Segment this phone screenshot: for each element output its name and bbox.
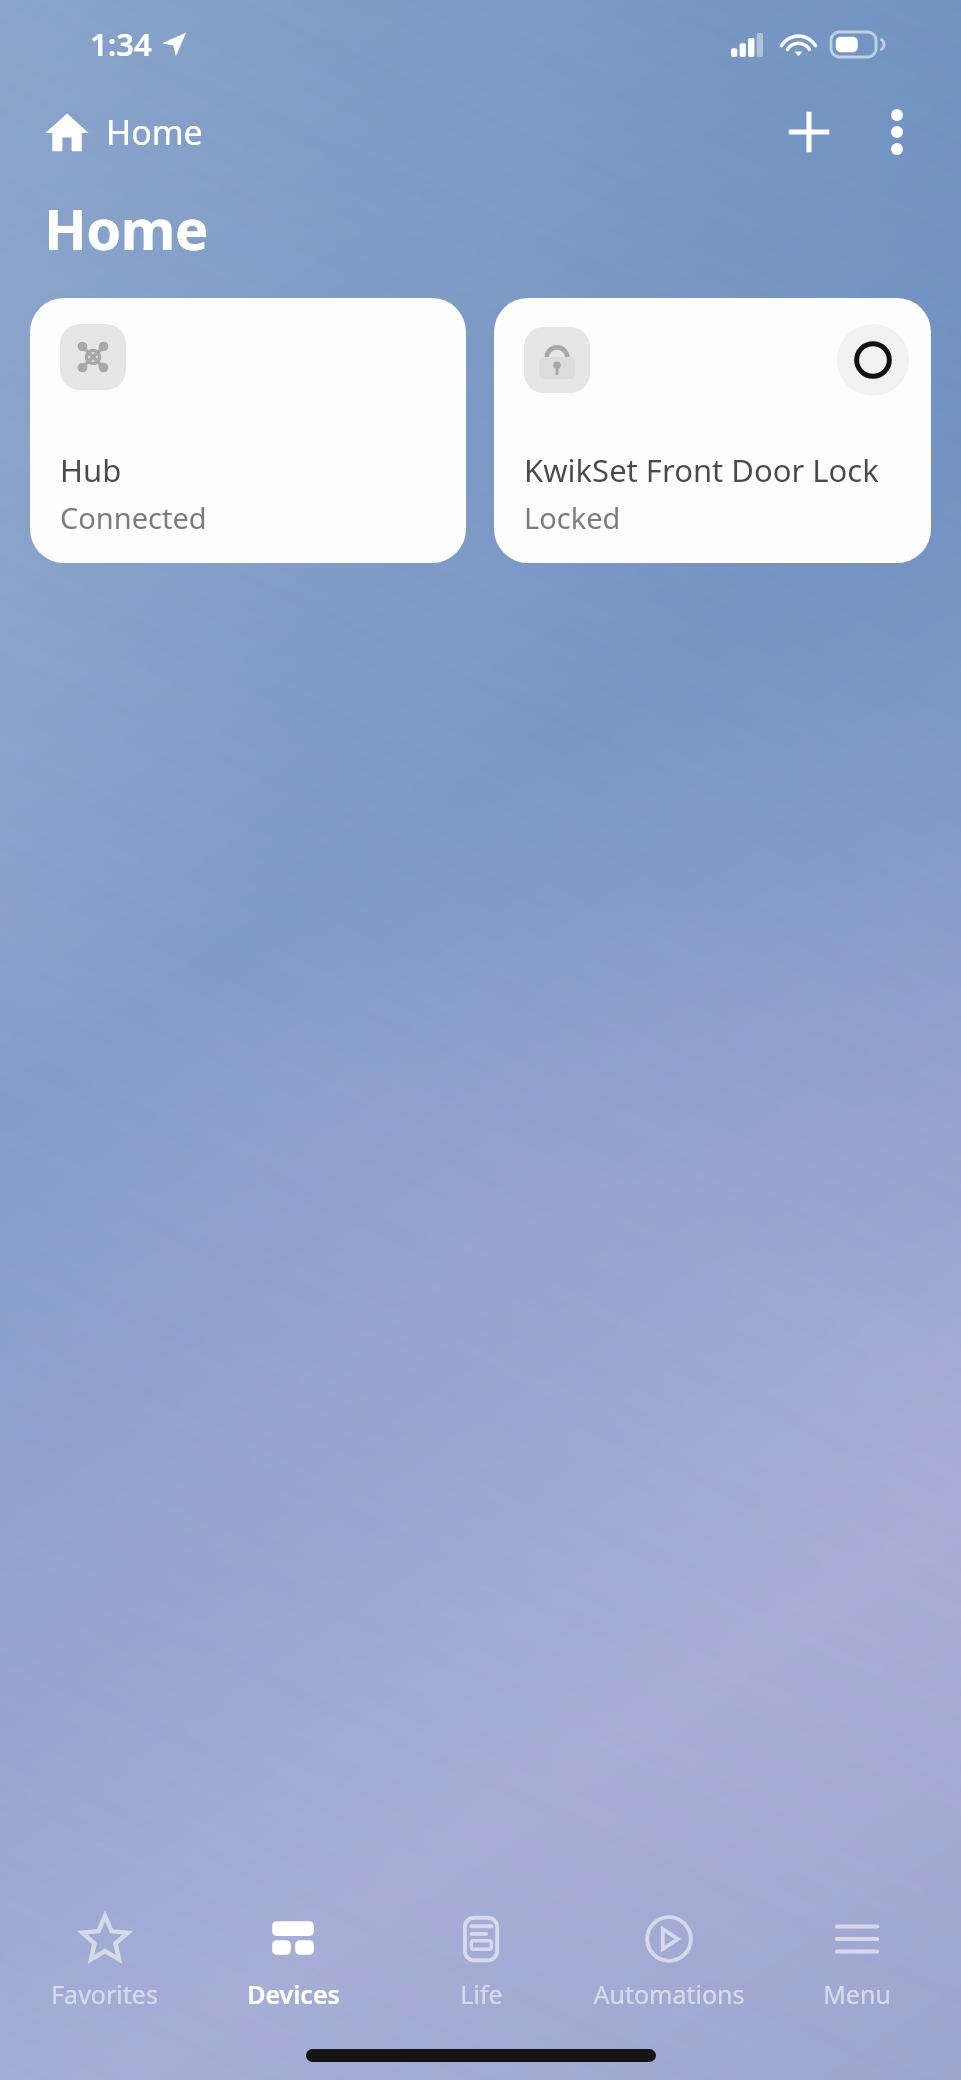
staticText: Automations (593, 1977, 745, 2011)
button[interactable]: Automations (575, 1899, 763, 2024)
button[interactable]: Favorites (10, 1899, 199, 2024)
button[interactable]: Hub (30, 298, 466, 563)
staticText: Home (44, 190, 208, 266)
staticText: Locked (524, 498, 621, 537)
button[interactable]: More options (853, 88, 941, 176)
staticText: KwikSet Front Door Lock (524, 449, 879, 491)
staticText: Devices (247, 1977, 340, 2011)
button[interactable]: Menu (763, 1899, 951, 2024)
staticText: Connected (60, 498, 207, 537)
staticText: Life (460, 1977, 503, 2011)
staticText: Hub (60, 449, 122, 491)
staticText: Favorites (51, 1977, 158, 2011)
staticText: Menu (823, 1977, 891, 2011)
button[interactable]: Life (387, 1899, 575, 2024)
staticText: 1:34 (90, 23, 152, 65)
button[interactable]: Add (765, 88, 853, 176)
button[interactable]: Toggle lock (837, 324, 909, 396)
button[interactable]: Home (44, 109, 203, 155)
button[interactable]: Toggle lock (494, 298, 931, 563)
button[interactable]: Devices (199, 1899, 387, 2024)
staticText: Home (106, 109, 203, 155)
